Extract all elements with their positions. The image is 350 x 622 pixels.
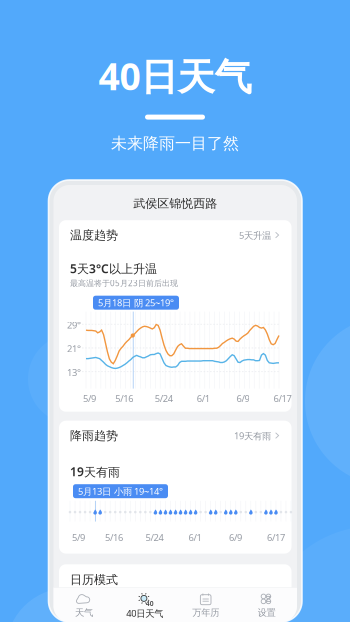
staticText: 6/1 bbox=[188, 531, 201, 544]
staticText: 40日天气 bbox=[126, 607, 163, 619]
staticText: 6/1 bbox=[197, 392, 210, 405]
button[interactable]: 温度趋势 bbox=[59, 220, 291, 250]
staticText: 设置 bbox=[258, 607, 276, 618]
button[interactable]: 天气 bbox=[53, 587, 114, 622]
staticText: 最高温将于05月23日前后出现 bbox=[70, 278, 178, 288]
staticText: 5月18日 阴 25~19° bbox=[98, 296, 174, 309]
staticText: 5天3°C以上升温 bbox=[70, 261, 157, 276]
staticText: 19天有雨 bbox=[70, 464, 120, 480]
staticText: 5/16 bbox=[105, 531, 123, 544]
staticText: 未来降雨一目了然 bbox=[111, 134, 239, 153]
staticText: 13° bbox=[67, 366, 81, 379]
staticText: 5天升温 bbox=[239, 229, 271, 241]
staticText: 6/17 bbox=[267, 531, 285, 544]
staticText: 武侯区锦悦西路 bbox=[133, 196, 217, 211]
staticText: 5/9 bbox=[83, 392, 96, 405]
staticText: 40日天气 bbox=[98, 51, 251, 101]
button[interactable]: 万年历 bbox=[175, 587, 236, 622]
staticText: 29° bbox=[67, 319, 81, 331]
staticText: 6/17 bbox=[273, 392, 291, 405]
staticText: 19天有雨 bbox=[234, 429, 271, 442]
staticText: 天气 bbox=[75, 607, 93, 618]
button[interactable]: 设置 bbox=[236, 587, 297, 622]
staticText: 温度趋势 bbox=[70, 228, 118, 242]
button[interactable]: 40 bbox=[114, 587, 175, 622]
staticText: 5/24 bbox=[155, 392, 173, 405]
button[interactable]: 降雨趋势 bbox=[59, 421, 291, 451]
staticText: 6/9 bbox=[236, 392, 249, 405]
staticText: 日历模式 bbox=[70, 572, 118, 587]
staticText: 6/9 bbox=[229, 531, 242, 544]
staticText: 降雨趋势 bbox=[70, 428, 118, 443]
staticText: 21° bbox=[67, 342, 81, 355]
staticText: 40 bbox=[146, 599, 154, 608]
staticText: 5/9 bbox=[72, 531, 85, 544]
staticText: 5月13日 小雨 19~14° bbox=[78, 485, 163, 497]
staticText: 万年历 bbox=[192, 607, 219, 618]
staticText: 5/24 bbox=[145, 531, 163, 544]
staticText: 5/16 bbox=[115, 392, 133, 405]
